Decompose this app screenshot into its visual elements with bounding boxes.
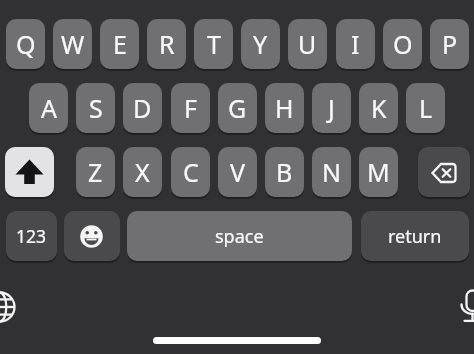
button[interactable]: E bbox=[100, 19, 139, 69]
staticText: L bbox=[419, 91, 433, 125]
button[interactable]: R bbox=[147, 19, 186, 69]
button[interactable]: Q bbox=[6, 19, 45, 69]
button[interactable]: W bbox=[53, 19, 92, 69]
button[interactable]: C bbox=[171, 147, 210, 197]
staticText: F bbox=[184, 91, 197, 125]
button[interactable]: X bbox=[123, 147, 162, 197]
button[interactable]: space bbox=[127, 211, 352, 261]
button[interactable] bbox=[5, 147, 54, 197]
button[interactable]: O bbox=[383, 19, 422, 69]
staticText: W bbox=[61, 27, 85, 61]
staticText: V bbox=[230, 155, 246, 189]
staticText: C bbox=[183, 155, 199, 189]
staticText: M bbox=[367, 155, 390, 189]
button[interactable]: V bbox=[218, 147, 257, 197]
staticText: Z bbox=[88, 155, 103, 189]
button[interactable]: T bbox=[194, 19, 233, 69]
staticText: Q bbox=[16, 27, 36, 61]
button[interactable]: S bbox=[76, 83, 115, 133]
button[interactable] bbox=[64, 211, 120, 261]
staticText: E bbox=[113, 27, 127, 61]
button[interactable] bbox=[456, 290, 474, 324]
staticText: X bbox=[135, 155, 150, 189]
button[interactable]: N bbox=[312, 147, 351, 197]
staticText: K bbox=[371, 91, 387, 125]
button[interactable]: 123 bbox=[6, 211, 57, 261]
staticText: G bbox=[228, 91, 247, 125]
button[interactable] bbox=[418, 147, 470, 197]
button[interactable]: U bbox=[288, 19, 327, 69]
button[interactable]: I bbox=[336, 19, 375, 69]
button[interactable]: D bbox=[123, 83, 162, 133]
staticText: D bbox=[133, 91, 152, 125]
staticText: T bbox=[207, 27, 221, 61]
button[interactable]: B bbox=[265, 147, 304, 197]
staticText: N bbox=[322, 155, 342, 189]
staticText: I bbox=[351, 27, 360, 61]
staticText: space bbox=[215, 224, 264, 249]
button[interactable]: A bbox=[29, 83, 68, 133]
button[interactable]: L bbox=[406, 83, 445, 133]
button[interactable]: K bbox=[359, 83, 398, 133]
staticText: B bbox=[276, 155, 293, 189]
staticText: P bbox=[442, 27, 458, 61]
button[interactable] bbox=[0, 290, 22, 324]
staticText: J bbox=[328, 91, 335, 125]
staticText: Y bbox=[253, 27, 268, 61]
button[interactable]: J bbox=[312, 83, 351, 133]
staticText: return bbox=[388, 224, 442, 249]
staticText: A bbox=[41, 91, 57, 125]
staticText: R bbox=[159, 27, 175, 61]
button[interactable]: M bbox=[359, 147, 398, 197]
button[interactable]: F bbox=[171, 83, 210, 133]
staticText: O bbox=[393, 27, 413, 61]
button[interactable]: Y bbox=[241, 19, 280, 69]
staticText: U bbox=[298, 27, 317, 61]
staticText: S bbox=[89, 91, 103, 125]
button[interactable]: G bbox=[218, 83, 257, 133]
button[interactable]: return bbox=[361, 211, 469, 261]
button[interactable]: Z bbox=[76, 147, 115, 197]
button[interactable]: P bbox=[430, 19, 469, 69]
staticText: 123 bbox=[16, 224, 47, 248]
staticText: H bbox=[275, 91, 294, 125]
button[interactable]: H bbox=[265, 83, 304, 133]
